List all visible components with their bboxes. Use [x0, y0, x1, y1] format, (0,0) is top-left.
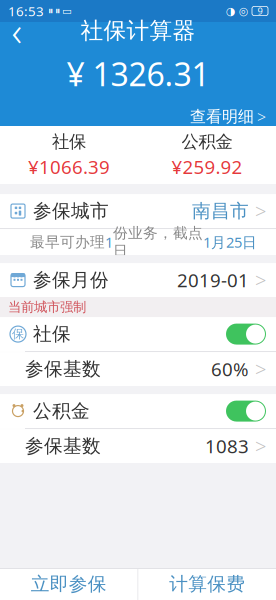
staticText: 参保城市: [33, 200, 109, 222]
staticText: >: [255, 433, 266, 459]
staticText: 公积金: [33, 400, 90, 422]
staticText: ⏸: [55, 6, 60, 16]
staticText: >: [255, 198, 266, 224]
staticText: 参保月份: [33, 269, 109, 291]
staticText: ▭: [62, 5, 72, 17]
button[interactable]: 参保城市: [0, 194, 276, 228]
button[interactable]: 参保基数: [0, 429, 276, 463]
button[interactable]: 参保月份: [0, 263, 276, 297]
staticText: 16:53: [8, 2, 44, 20]
staticText: 最早可办理: [30, 233, 105, 251]
staticText: 立即参保: [31, 572, 107, 595]
staticText: 计算保费: [169, 572, 245, 595]
staticText: 保: [12, 327, 24, 341]
staticText: 社保: [52, 131, 86, 152]
button[interactable]: Back: [0, 14, 34, 48]
staticText: 9: [257, 5, 262, 17]
staticText: 1月25日: [203, 232, 257, 252]
staticText: >: [257, 106, 266, 127]
staticText: 60%: [211, 357, 249, 381]
staticText: >: [255, 356, 266, 382]
staticText: ⏸: [48, 6, 53, 16]
button[interactable]: 计算保费: [138, 568, 276, 600]
button[interactable]: 查看明细: [180, 103, 276, 130]
button[interactable]: 立即参保: [0, 568, 137, 600]
button[interactable]: 参保基数: [0, 352, 276, 386]
staticText: 参保基数: [25, 435, 101, 457]
staticText: ‹: [11, 4, 22, 57]
staticText: >: [255, 267, 266, 293]
staticText: ¥259.92: [171, 154, 242, 179]
staticText: 参保基数: [25, 358, 101, 380]
button[interactable]: Toggle 社保: [226, 324, 266, 345]
staticText: 社保: [33, 323, 71, 345]
staticText: 1083: [205, 434, 249, 458]
staticText: ◎: [239, 5, 248, 17]
staticText: 2019-01: [177, 268, 249, 292]
staticText: ¥ 1326.31: [66, 53, 209, 95]
staticText: 份业务，截点日: [113, 224, 203, 260]
staticText: 南昌市: [192, 200, 249, 222]
staticText: 公积金: [181, 131, 232, 152]
staticText: 当前城市强制: [8, 299, 86, 315]
staticText: ◑: [226, 5, 235, 17]
staticText: 1: [105, 232, 113, 252]
staticText: 查看明细: [190, 107, 254, 127]
button[interactable]: Toggle 公积金: [226, 401, 266, 422]
staticText: ¥1066.39: [28, 154, 110, 179]
staticText: 社保计算器: [80, 17, 195, 44]
